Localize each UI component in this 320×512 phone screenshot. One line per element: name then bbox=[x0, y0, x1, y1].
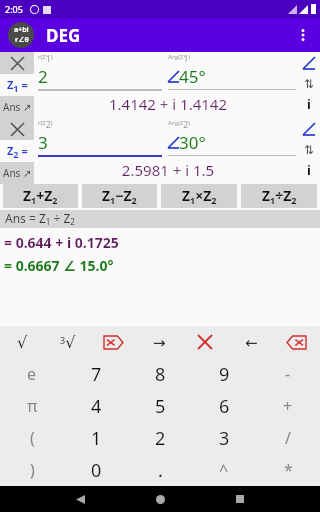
staticText: a+bi bbox=[14, 25, 29, 35]
button[interactable]: π bbox=[0, 390, 64, 422]
button[interactable]: 8 bbox=[128, 358, 192, 390]
button[interactable]: * bbox=[256, 454, 320, 486]
button[interactable]: 6 bbox=[192, 390, 256, 422]
staticText: r∠θ bbox=[15, 35, 29, 45]
button[interactable]: e bbox=[0, 358, 64, 390]
button[interactable]: 9 bbox=[192, 358, 256, 390]
staticText: 8 bbox=[155, 362, 166, 387]
button[interactable]: Recents bbox=[222, 486, 258, 512]
staticText: ← bbox=[245, 334, 258, 351]
button[interactable]: Swap bbox=[299, 74, 319, 94]
staticText: 3 bbox=[38, 131, 168, 154]
staticText: √ bbox=[17, 333, 28, 352]
button[interactable]: Z1+Z2 bbox=[3, 184, 78, 208]
staticText: Arg(Z1) bbox=[168, 52, 191, 64]
staticText: * bbox=[284, 459, 293, 481]
button[interactable]: Angle form bbox=[298, 52, 320, 74]
button[interactable]: Backspace bbox=[274, 326, 320, 358]
staticText: Z1+Z2 bbox=[23, 186, 58, 206]
staticText: ) bbox=[30, 459, 35, 481]
button[interactable]: Imaginary form bbox=[299, 94, 319, 114]
staticText: Z2 = bbox=[7, 143, 28, 160]
button[interactable]: 7 bbox=[64, 358, 128, 390]
staticText: ^ bbox=[219, 459, 229, 481]
staticText: π bbox=[27, 395, 38, 417]
button[interactable]: 4 bbox=[64, 390, 128, 422]
button[interactable]: 5 bbox=[128, 390, 192, 422]
staticText: . bbox=[158, 458, 163, 483]
button[interactable]: √ bbox=[0, 326, 45, 358]
staticText: = 0.6667 ∠ 15.0° bbox=[4, 256, 114, 275]
staticText: 3√ bbox=[60, 333, 76, 352]
staticText: Ans ↗ bbox=[3, 100, 32, 114]
staticText: 5 bbox=[155, 394, 166, 419]
staticText: ⇅ bbox=[304, 77, 315, 91]
button[interactable]: Z1 = bbox=[0, 74, 34, 96]
staticText: r(Z2) bbox=[38, 118, 53, 130]
button[interactable]: Move left bbox=[228, 326, 274, 358]
button[interactable]: Clear all bbox=[182, 326, 228, 358]
button[interactable]: ^ bbox=[192, 454, 256, 486]
button[interactable]: 2 bbox=[128, 422, 192, 454]
button[interactable] bbox=[0, 52, 34, 74]
staticText: 1 bbox=[91, 426, 102, 451]
staticText: 7 bbox=[91, 362, 102, 387]
button[interactable]: / bbox=[256, 422, 320, 454]
staticText: 1.4142 + i 1.4142 bbox=[38, 94, 298, 114]
button[interactable]: Z2 = bbox=[0, 140, 34, 162]
button[interactable]: Back bbox=[62, 486, 98, 512]
button[interactable]: 1 bbox=[64, 422, 128, 454]
staticText: DEG bbox=[46, 24, 81, 47]
button[interactable]: Ans ↗ bbox=[0, 96, 34, 118]
staticText: 2 bbox=[38, 65, 168, 88]
staticText: 2 bbox=[155, 426, 166, 451]
staticText: 2:05 bbox=[5, 3, 23, 15]
staticText: Z1÷Z2 bbox=[262, 186, 297, 206]
staticText: Z1×Z2 bbox=[182, 186, 217, 206]
button[interactable]: Z1−Z2 bbox=[82, 184, 157, 208]
staticText: i bbox=[307, 161, 311, 179]
staticText: e bbox=[27, 363, 37, 385]
staticText: i bbox=[307, 95, 311, 113]
staticText: 2.5981 + i 1.5 bbox=[38, 160, 298, 180]
staticText: → bbox=[153, 334, 166, 351]
button[interactable]: ) bbox=[0, 454, 64, 486]
staticText: 4 bbox=[91, 394, 102, 419]
staticText: 0 bbox=[91, 458, 102, 483]
button[interactable]: Swap bbox=[299, 140, 319, 160]
button[interactable]: Imaginary form bbox=[299, 160, 319, 180]
button[interactable]: Move right bbox=[136, 326, 182, 358]
button[interactable]: Ans ↗ bbox=[0, 162, 34, 184]
button[interactable]: 0 bbox=[64, 454, 128, 486]
staticText: = 0.644 + i 0.1725 bbox=[4, 233, 119, 252]
staticText: Z1−Z2 bbox=[102, 186, 137, 206]
staticText: 3 bbox=[219, 426, 230, 451]
staticText: 6 bbox=[219, 394, 230, 419]
button[interactable]: Angle form bbox=[298, 118, 320, 140]
staticText: Arg(Z2) bbox=[168, 118, 191, 130]
button[interactable]: Clear entry bbox=[90, 326, 136, 358]
staticText: 30° bbox=[179, 131, 206, 154]
staticText: r(Z1) bbox=[38, 52, 53, 64]
staticText: Ans = Z1 ÷ Z2 bbox=[5, 210, 75, 228]
staticText: Z1 = bbox=[7, 77, 28, 94]
staticText: + bbox=[283, 395, 293, 417]
button[interactable]: 3√ bbox=[45, 326, 90, 358]
staticText: Ans ↗ bbox=[3, 166, 32, 180]
button[interactable] bbox=[0, 118, 34, 140]
button[interactable]: More options bbox=[286, 18, 320, 52]
staticText: ⇅ bbox=[304, 143, 315, 157]
button[interactable]: Z1÷Z2 bbox=[241, 184, 317, 208]
button[interactable]: + bbox=[256, 390, 320, 422]
button[interactable]: ( bbox=[0, 422, 64, 454]
staticText: / bbox=[285, 427, 291, 449]
button[interactable]: Home bbox=[142, 486, 178, 512]
staticText: - bbox=[285, 363, 291, 385]
staticText: ( bbox=[30, 427, 35, 449]
button[interactable]: Z1×Z2 bbox=[161, 184, 237, 208]
button[interactable]: . bbox=[128, 454, 192, 486]
staticText: 45° bbox=[179, 65, 206, 88]
staticText: 9 bbox=[219, 362, 230, 387]
button[interactable]: - bbox=[256, 358, 320, 390]
button[interactable]: 3 bbox=[192, 422, 256, 454]
